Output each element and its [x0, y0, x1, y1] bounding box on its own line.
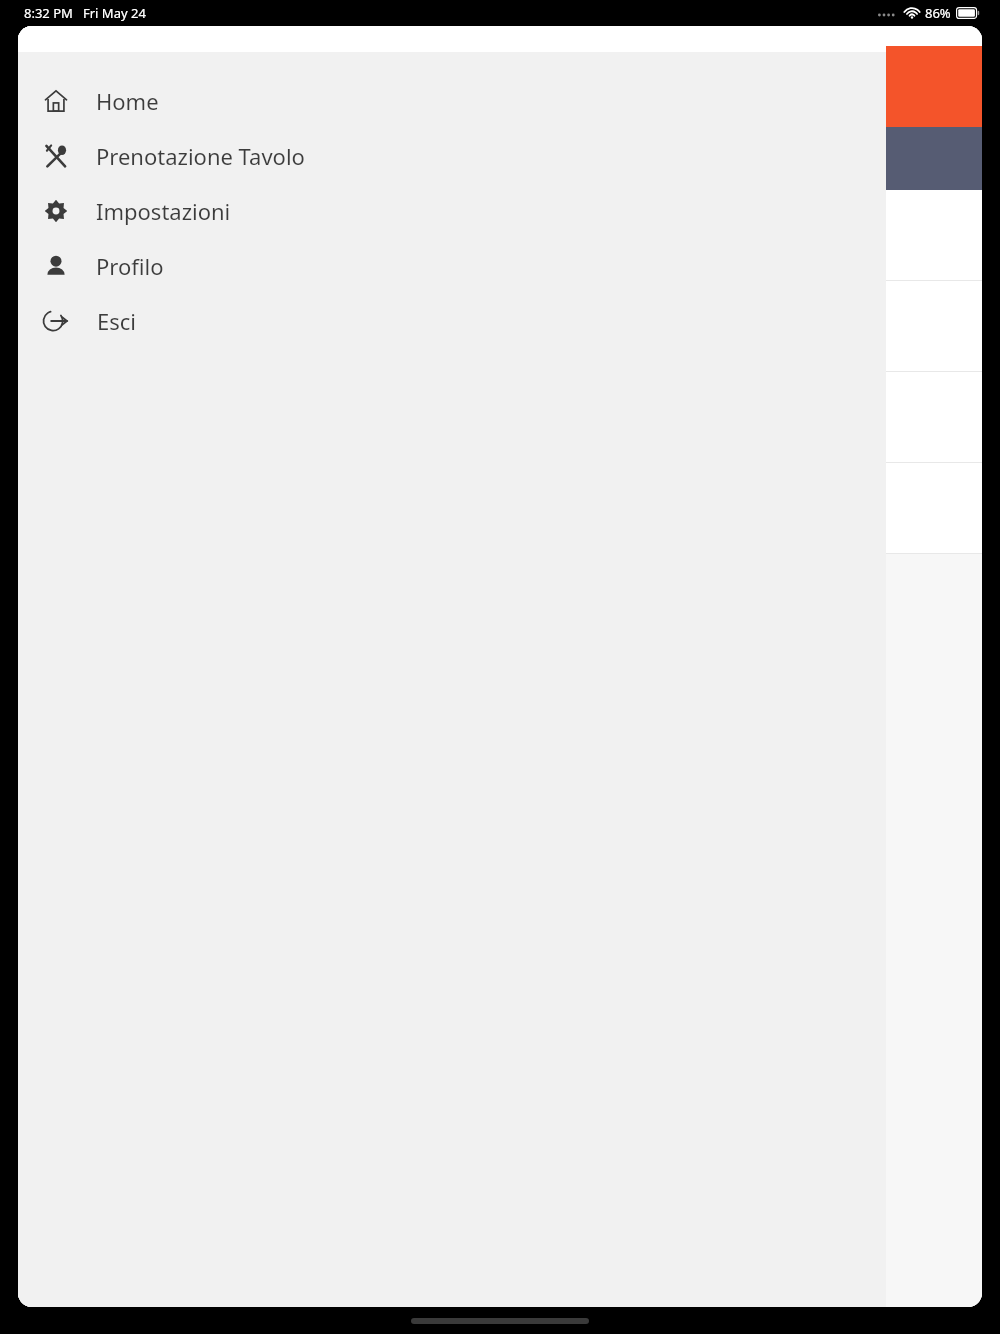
button[interactable]: Prenotazione Tavolo: [18, 128, 886, 183]
button[interactable]: [86, 201, 206, 271]
button[interactable]: Nuovo: [92, 137, 129, 181]
button[interactable]: Esci: [18, 293, 886, 348]
staticText: 8:32 PM: [24, 4, 73, 22]
staticText: Home: [96, 86, 159, 116]
button[interactable]: Profilo: [18, 238, 886, 293]
staticText: 86%: [925, 4, 951, 22]
button[interactable]: Open menu: [32, 64, 78, 110]
staticText: Profilo: [96, 251, 164, 281]
button[interactable]: [86, 292, 206, 362]
staticText: Esci: [97, 306, 137, 336]
button[interactable]: Impostazioni: [18, 183, 886, 238]
staticText: Impostazioni: [96, 196, 231, 226]
button[interactable]: Home: [18, 73, 886, 128]
staticText: Prenotazione Tavolo: [96, 141, 305, 171]
staticText: Fri May 24: [83, 4, 146, 22]
